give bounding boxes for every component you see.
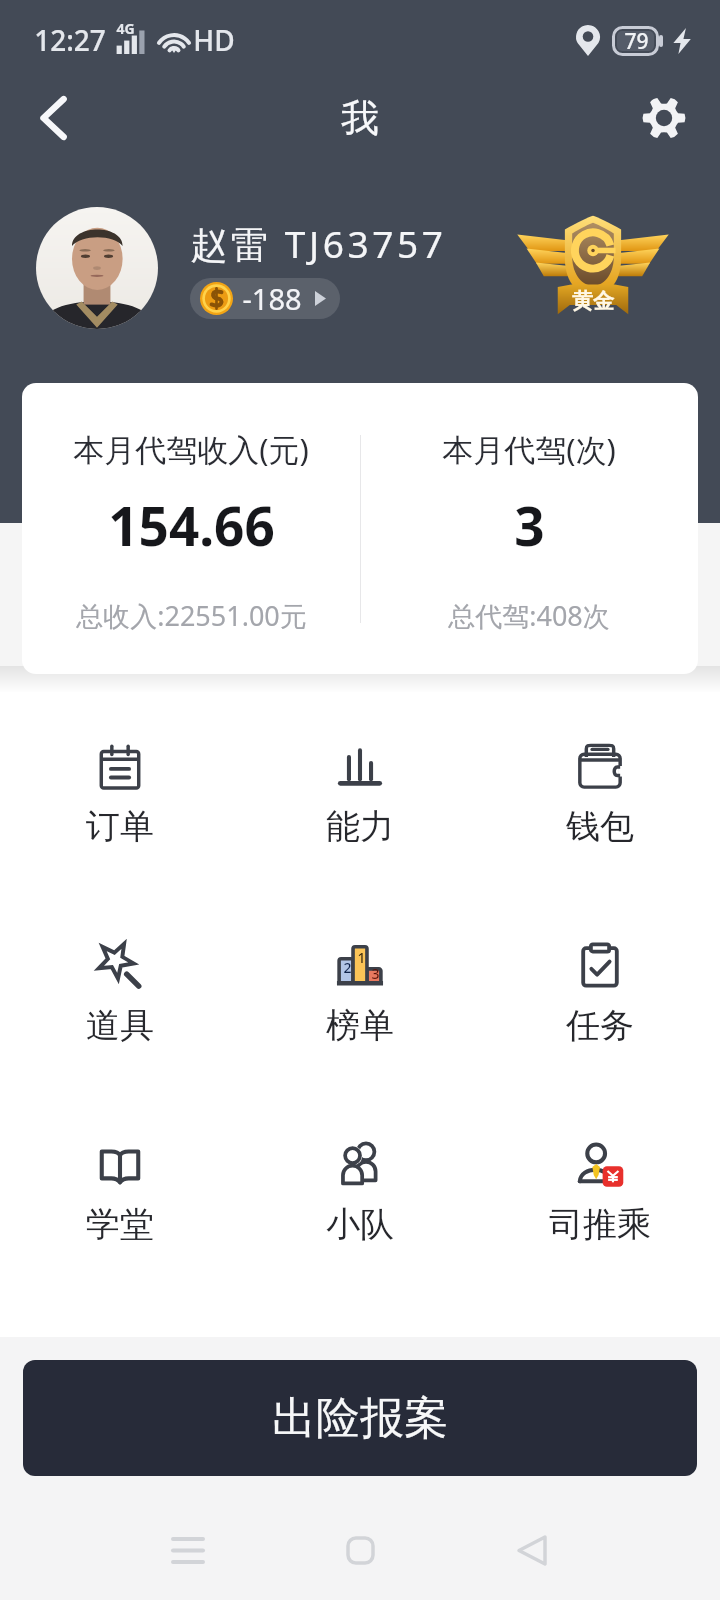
button[interactable]: 订单 — [0, 724, 240, 923]
button[interactable]: 司推乘 — [480, 1122, 720, 1321]
staticText: 我 — [341, 94, 379, 142]
staticText: 任务 — [566, 1004, 634, 1047]
staticText: 3 — [514, 489, 545, 561]
staticText: 2 — [343, 958, 352, 976]
staticText: 154.66 — [108, 489, 275, 561]
staticText: 3 — [371, 964, 380, 982]
staticText: 司推乘 — [549, 1203, 651, 1246]
staticText: 12:27 — [34, 21, 106, 59]
button[interactable]: -188 — [190, 278, 340, 319]
staticText: 能力 — [326, 805, 394, 848]
button[interactable]: 本月代驾收入(元) — [22, 383, 698, 674]
staticText: 榜单 — [326, 1004, 394, 1047]
button[interactable]: 小队 — [240, 1122, 480, 1321]
staticText: HD — [193, 21, 235, 59]
staticText: 黄金 — [572, 288, 614, 314]
staticText: 赵雷 TJ63757 — [190, 218, 447, 269]
staticText: 订单 — [86, 805, 154, 848]
button[interactable]: Settings — [624, 78, 704, 158]
button[interactable]: 道具 — [0, 923, 240, 1122]
staticText: 总代驾:408次 — [448, 597, 610, 634]
button[interactable]: Profile photo — [36, 207, 158, 329]
staticText: 79 — [624, 27, 649, 56]
staticText: 总收入:22551.00元 — [76, 597, 307, 634]
staticText: 出险报案 — [272, 1391, 448, 1446]
button[interactable]: Back — [490, 1508, 574, 1592]
staticText: 本月代驾(次) — [442, 428, 616, 470]
button[interactable]: 2 — [240, 923, 480, 1122]
button[interactable]: Recent apps — [146, 1508, 230, 1592]
staticText: 4G — [116, 19, 135, 38]
button[interactable]: 能力 — [240, 724, 480, 923]
staticText: 钱包 — [566, 805, 634, 848]
staticText: 小队 — [326, 1203, 394, 1246]
button[interactable]: 出险报案 — [23, 1360, 697, 1476]
staticText: 学堂 — [86, 1203, 154, 1246]
staticText: 本月代驾收入(元) — [73, 428, 309, 470]
staticText: -188 — [242, 279, 302, 318]
button[interactable]: 钱包 — [480, 724, 720, 923]
button[interactable]: Back — [14, 78, 94, 158]
staticText: 道具 — [86, 1004, 154, 1047]
button[interactable]: 学堂 — [0, 1122, 240, 1321]
button[interactable]: Home — [318, 1508, 402, 1592]
button[interactable]: Gold level badge — [518, 212, 668, 322]
staticText: 1 — [357, 948, 366, 966]
button[interactable]: 任务 — [480, 923, 720, 1122]
